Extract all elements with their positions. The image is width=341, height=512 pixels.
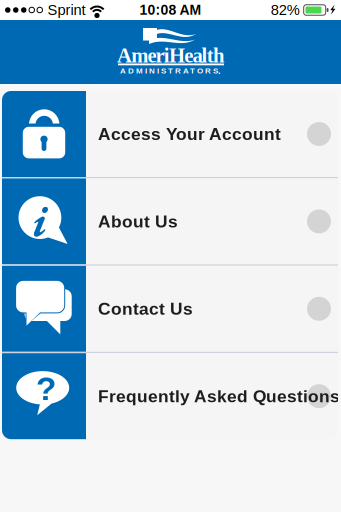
staticText: ? <box>36 370 56 407</box>
staticText: . <box>218 65 221 76</box>
staticText: About Us <box>98 212 178 231</box>
staticText: 10:08 AM <box>139 2 201 18</box>
staticText: Frequently Asked Questions <box>98 386 340 406</box>
button[interactable]: Access Your Account <box>2 91 338 177</box>
button[interactable]: Contact Us <box>2 266 338 352</box>
staticText: Sprint <box>47 2 85 18</box>
button[interactable]: ? <box>2 353 338 439</box>
staticText: ADMINISTRATORS <box>120 66 218 75</box>
staticText: Contact Us <box>98 299 193 318</box>
staticText: Access Your Account <box>98 124 281 144</box>
staticText: i <box>32 191 47 249</box>
staticText: AmeriHealth <box>117 44 224 67</box>
staticText: 82% <box>271 2 300 18</box>
button[interactable]: i <box>2 178 338 264</box>
